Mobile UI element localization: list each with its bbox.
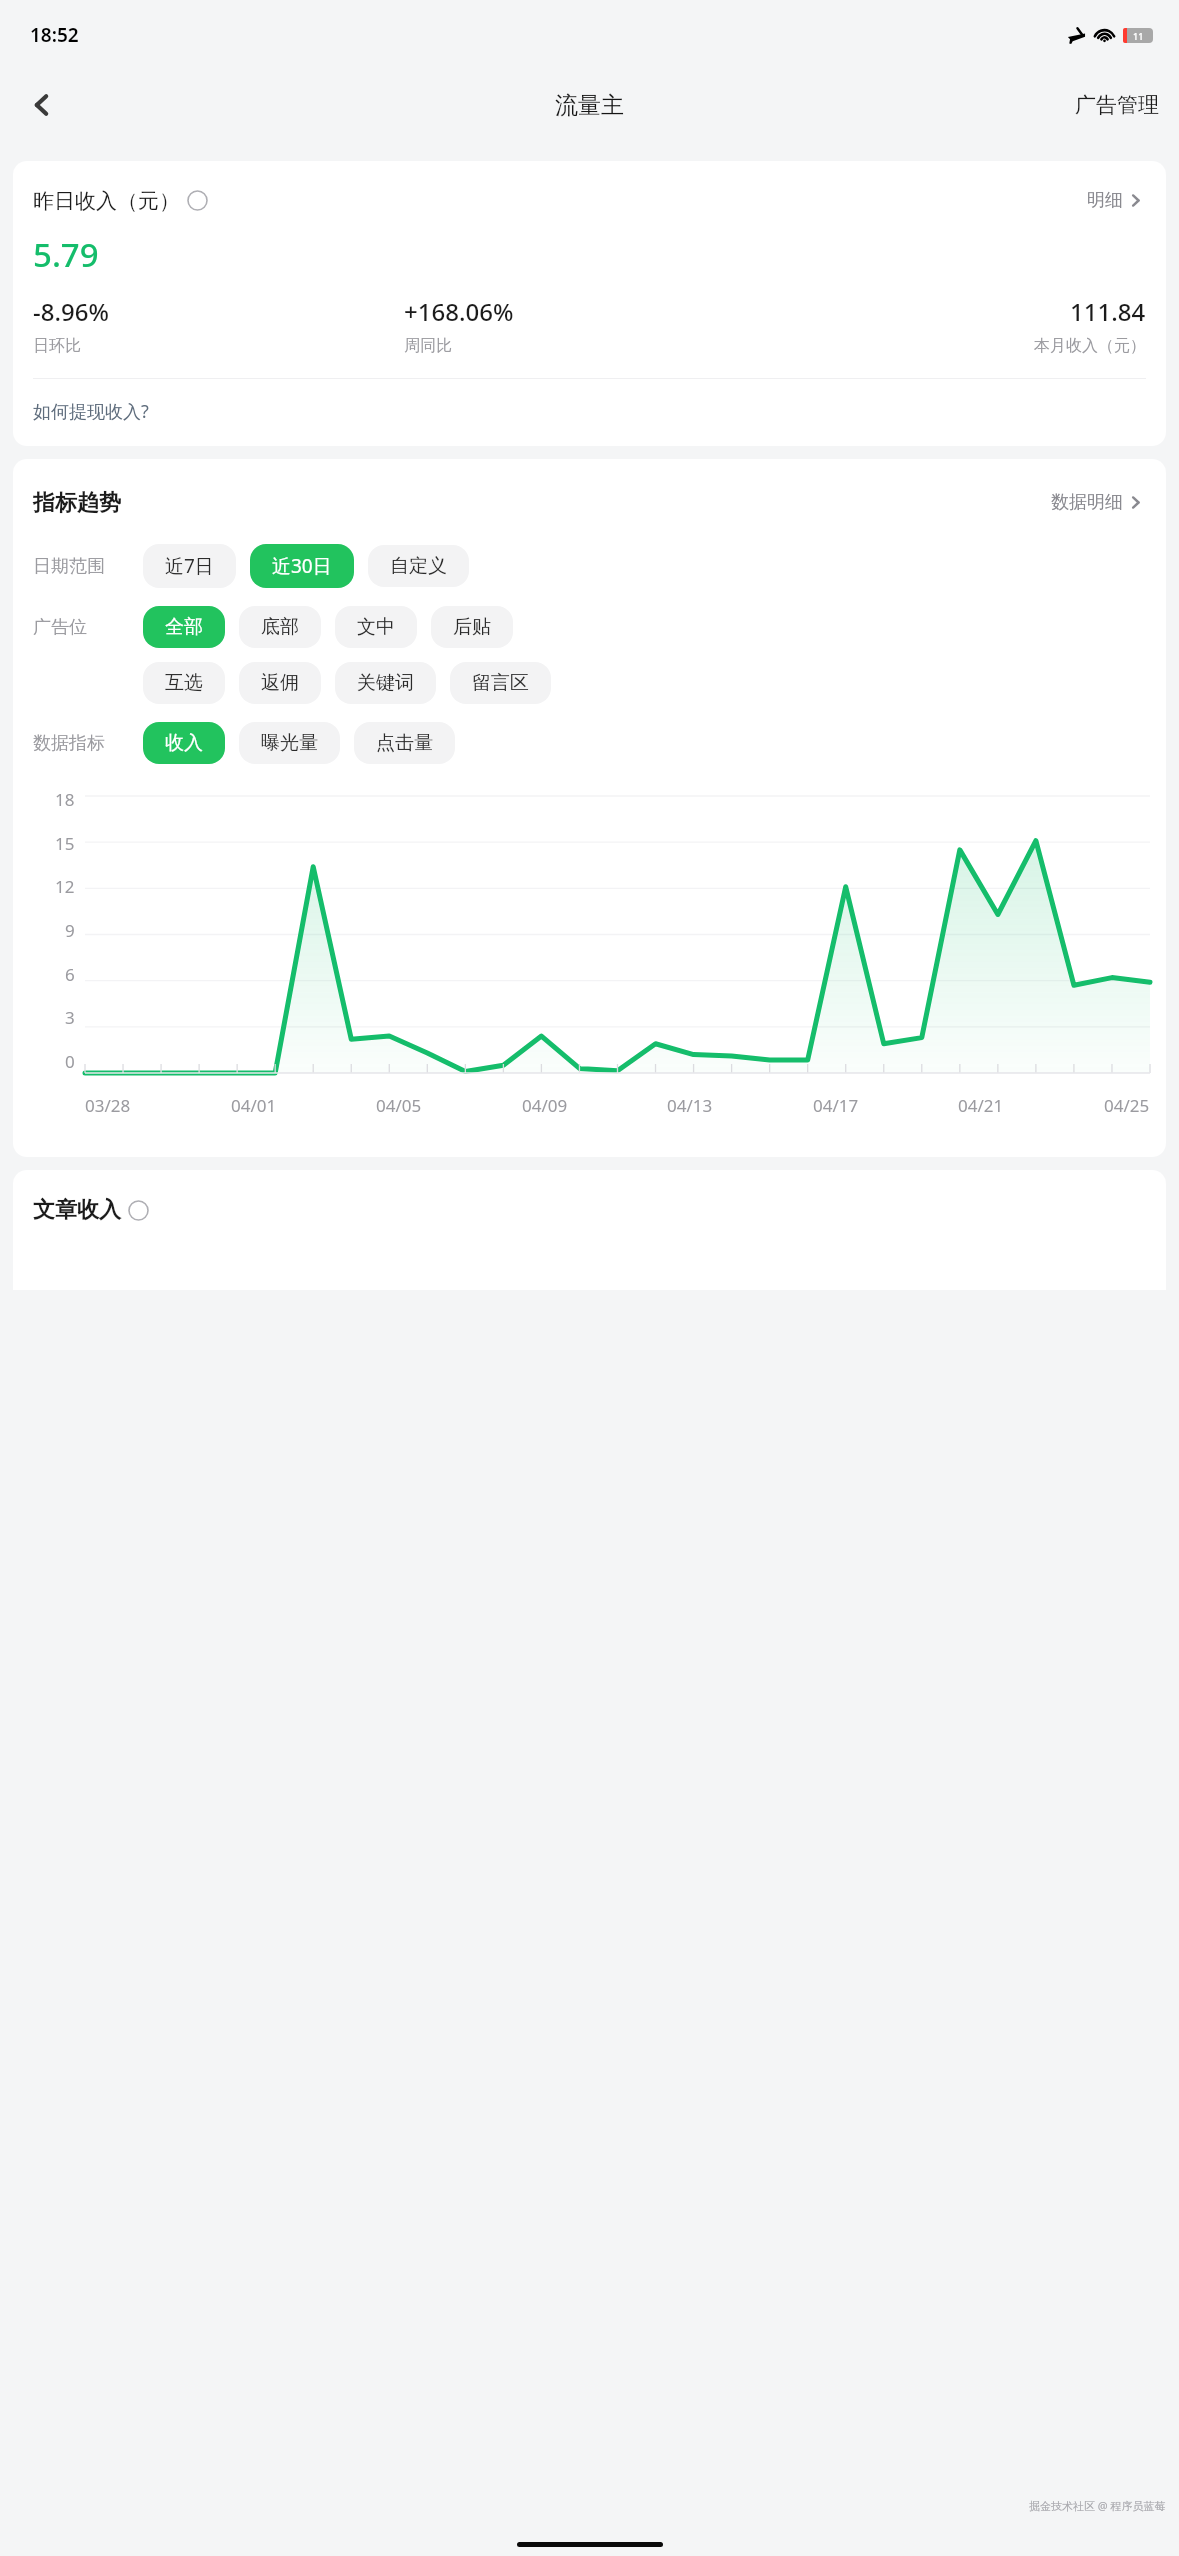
staticText: 6 xyxy=(65,963,75,986)
staticText: 指标趋势 xyxy=(33,489,121,517)
staticText: 数据明细 xyxy=(1051,491,1123,514)
button[interactable]: 近7日 xyxy=(143,544,236,588)
button[interactable]: Back xyxy=(16,79,68,131)
staticText: 日期范围 xyxy=(33,555,105,578)
button[interactable]: 返佣 xyxy=(239,662,321,704)
staticText: 本月收入（元） xyxy=(1034,336,1146,356)
button[interactable]: 留言区 xyxy=(450,662,551,704)
staticText: 3 xyxy=(65,1006,75,1029)
staticText: 15 xyxy=(55,832,75,855)
staticText: 12 xyxy=(55,875,75,898)
staticText: 周同比 xyxy=(404,336,452,356)
staticText: 文章收入 xyxy=(33,1196,121,1224)
staticText: 04/01 xyxy=(231,1094,277,1117)
button[interactable]: 如何提现收入? xyxy=(13,379,169,446)
staticText: 03/28 xyxy=(85,1094,131,1117)
staticText: 互选 xyxy=(165,671,203,695)
staticText: 0 xyxy=(65,1050,75,1073)
button[interactable]: 文中 xyxy=(335,606,417,648)
button[interactable]: 自定义 xyxy=(368,545,469,587)
staticText: 9 xyxy=(65,919,75,942)
button[interactable]: 帮助 xyxy=(185,188,210,213)
button[interactable]: 全部 xyxy=(143,606,225,648)
staticText: 广告位 xyxy=(33,616,87,639)
staticText: 后贴 xyxy=(453,615,491,639)
staticText: 返佣 xyxy=(261,671,299,695)
button[interactable]: 曝光量 xyxy=(239,722,340,764)
staticText: 18:52 xyxy=(30,22,79,48)
staticText: 点击量 xyxy=(376,731,433,755)
button[interactable]: 广告管理 xyxy=(1055,80,1179,130)
staticText: 留言区 xyxy=(472,671,529,695)
staticText: 04/09 xyxy=(522,1094,568,1117)
staticText: 流量主 xyxy=(555,91,624,120)
staticText: 明细 xyxy=(1087,189,1123,212)
staticText: 04/25 xyxy=(1104,1094,1150,1117)
staticText: 自定义 xyxy=(390,554,447,578)
staticText: 昨日收入（元） xyxy=(33,188,180,214)
staticText: 近7日 xyxy=(165,553,214,579)
staticText: 广告管理 xyxy=(1075,92,1159,118)
button[interactable]: 近30日 xyxy=(250,544,354,588)
staticText: -8.96% xyxy=(33,295,109,328)
staticText: 数据指标 xyxy=(33,732,105,755)
staticText: 收入 xyxy=(165,731,203,755)
button[interactable]: 关键词 xyxy=(335,662,436,704)
button[interactable]: 明细 xyxy=(1081,183,1150,218)
staticText: 全部 xyxy=(165,615,203,639)
button[interactable]: 后贴 xyxy=(431,606,513,648)
staticText: 18 xyxy=(55,788,75,811)
staticText: 5.79 xyxy=(33,232,99,277)
staticText: 近30日 xyxy=(272,553,332,579)
staticText: 日环比 xyxy=(33,336,81,356)
staticText: +168.06% xyxy=(404,295,514,328)
staticText: 04/05 xyxy=(376,1094,422,1117)
staticText: 底部 xyxy=(261,615,299,639)
staticText: 11 xyxy=(1133,30,1144,42)
staticText: 如何提现收入? xyxy=(33,399,149,424)
staticText: 04/21 xyxy=(958,1094,1004,1117)
staticText: 111.84 xyxy=(1070,295,1146,328)
staticText: 文中 xyxy=(357,615,395,639)
button[interactable]: 底部 xyxy=(239,606,321,648)
button[interactable]: 点击量 xyxy=(354,722,455,764)
button[interactable]: 数据明细 xyxy=(1045,485,1150,520)
button[interactable]: 互选 xyxy=(143,662,225,704)
staticText: 04/17 xyxy=(813,1094,859,1117)
button[interactable]: 收入 xyxy=(143,722,225,764)
staticText: 掘金技术社区 @ 程序员蓝莓 xyxy=(1029,2498,1166,2513)
staticText: 曝光量 xyxy=(261,731,318,755)
staticText: 04/13 xyxy=(667,1094,713,1117)
button[interactable]: 帮助 xyxy=(126,1198,151,1223)
staticText: 关键词 xyxy=(357,671,414,695)
